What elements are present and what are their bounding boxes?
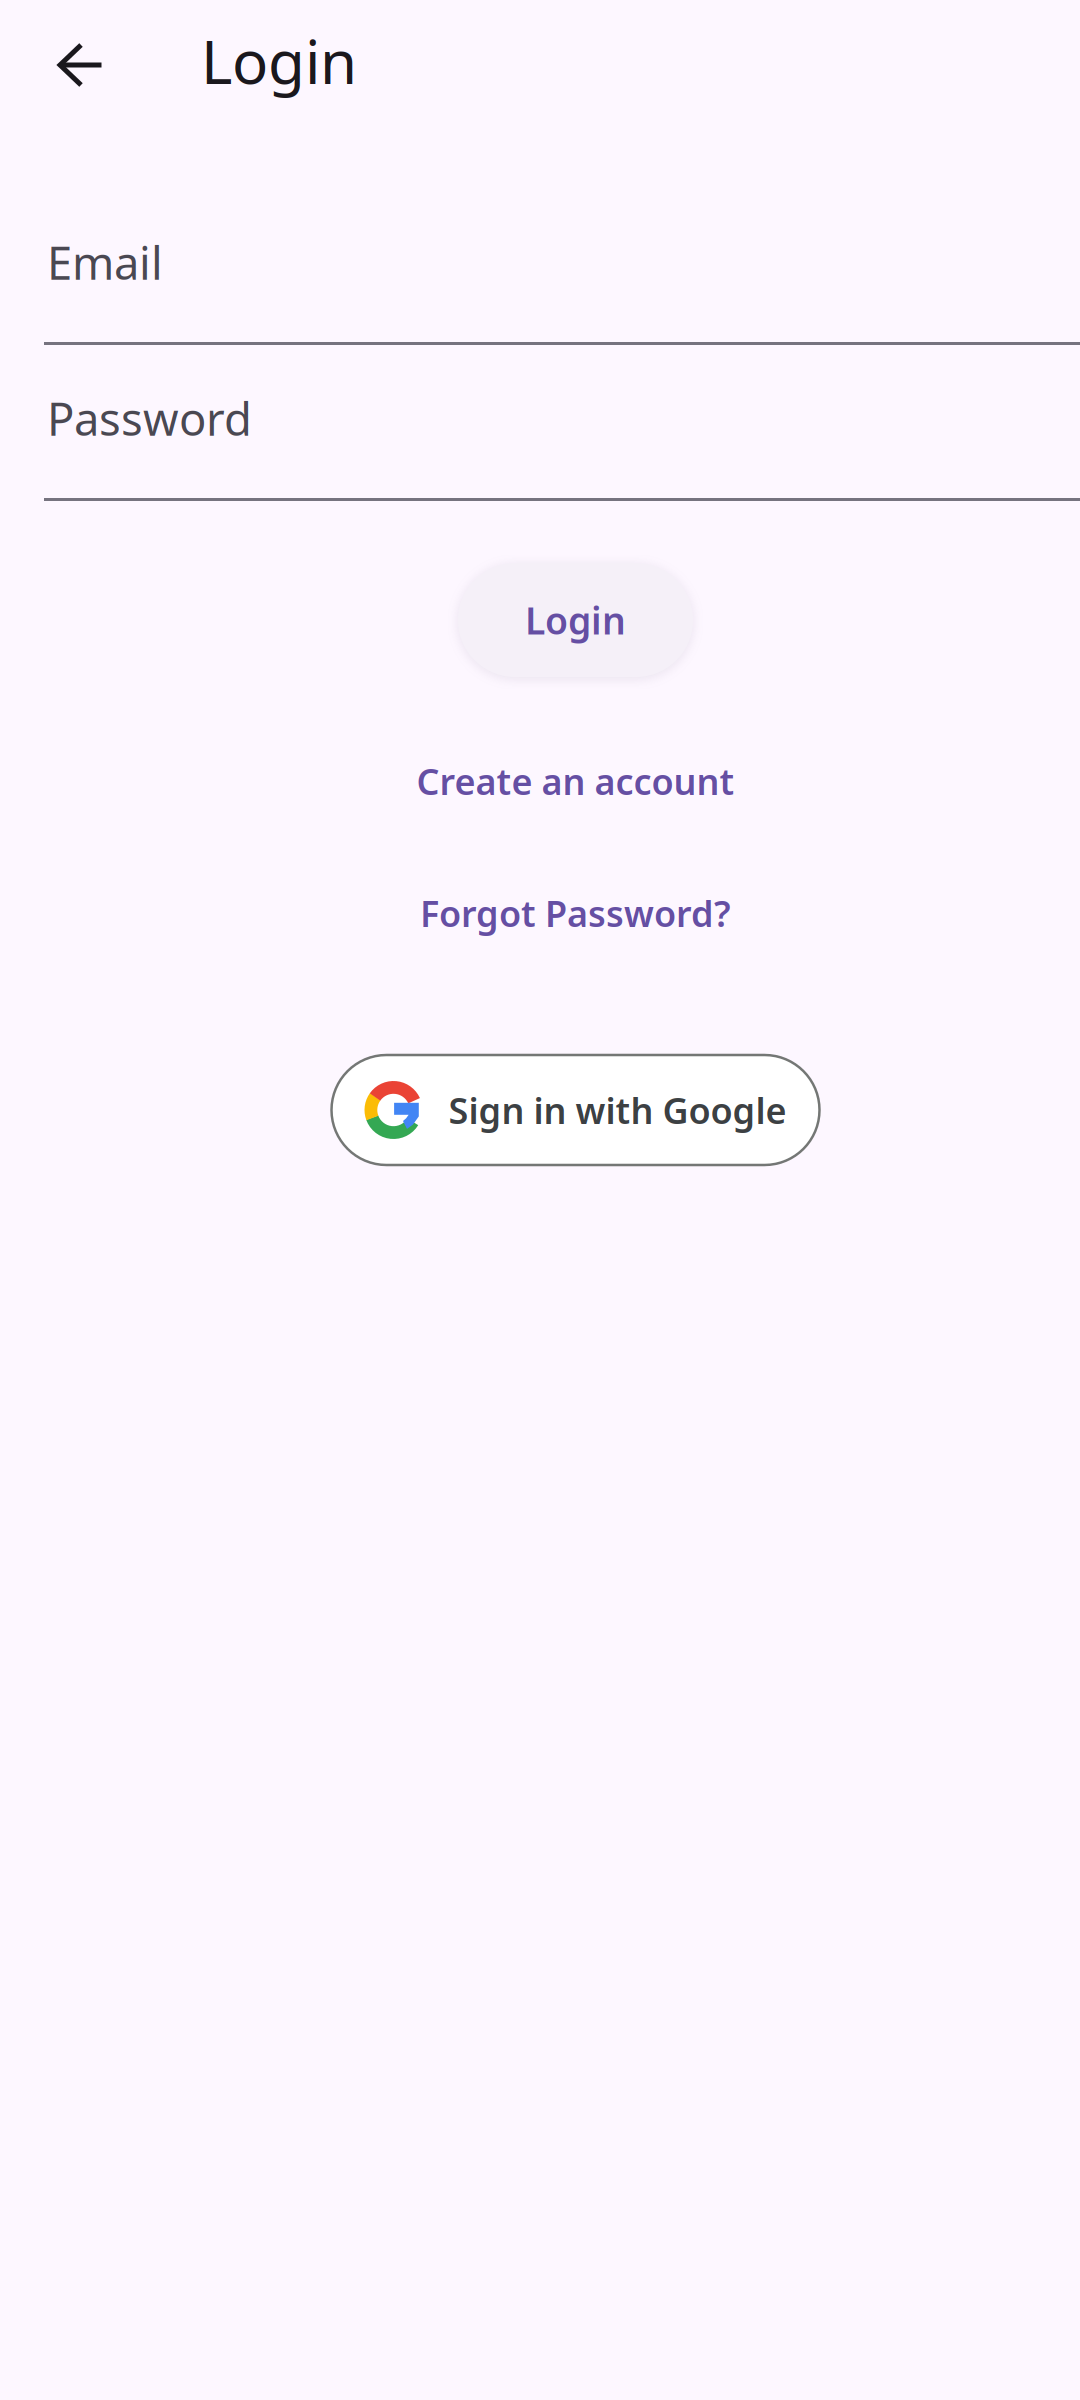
staticText: Password (47, 388, 252, 448)
staticText: Email (47, 232, 163, 292)
staticText: Sign in with Google (448, 1086, 786, 1134)
button[interactable]: Sign in with Google (331, 1055, 819, 1165)
staticText: Create an account (416, 757, 734, 805)
button[interactable]: Email (44, 245, 1080, 345)
button[interactable]: Forgot Password? (410, 882, 740, 944)
button[interactable]: Back (27, 10, 137, 120)
staticText: Login (525, 595, 626, 645)
button[interactable]: Create an account (410, 750, 740, 812)
button[interactable]: Password (44, 401, 1080, 501)
staticText: Forgot Password? (420, 889, 731, 937)
button[interactable]: Login (458, 563, 693, 677)
staticText: Login (201, 21, 357, 101)
